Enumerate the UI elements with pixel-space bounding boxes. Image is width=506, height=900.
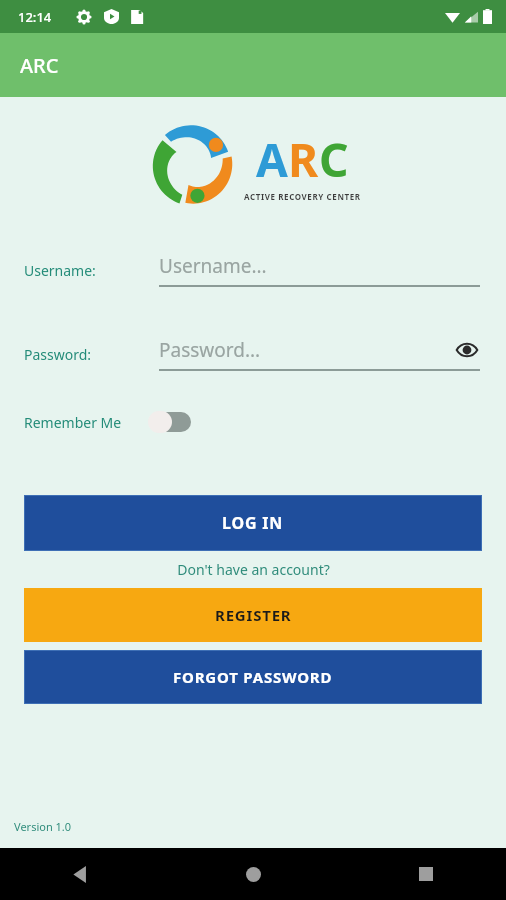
staticText: REGISTER [215,605,292,625]
button[interactable]: LOG IN [24,495,482,551]
button[interactable]: Back [58,852,102,896]
staticText: 12:14 [18,8,52,26]
button[interactable]: Recent apps [404,852,448,896]
staticText: ARC [20,52,59,79]
staticText: Password... [159,337,454,363]
staticText: Remember Me [24,413,122,432]
staticText: A [256,128,288,191]
staticText: Username: [24,261,96,280]
staticText: Password: [24,345,92,364]
button[interactable]: Remember Me [0,411,192,433]
staticText: Username... [159,253,480,279]
staticText: R [288,128,319,191]
staticText: LOG IN [222,512,284,534]
button[interactable]: Password... [159,337,480,371]
staticText: Version 1.0 [14,819,72,834]
button[interactable]: Don't have an account? [177,560,330,579]
button[interactable]: Username... [159,253,480,287]
staticText: ACTIVE RECOVERY CENTER [244,191,361,202]
button[interactable]: FORGOT PASSWORD [24,650,482,704]
staticText: C [319,128,349,191]
button[interactable]: REGISTER [24,588,482,642]
button[interactable]: Home [231,852,275,896]
button[interactable]: Show password [454,337,480,363]
staticText: FORGOT PASSWORD [173,667,333,687]
